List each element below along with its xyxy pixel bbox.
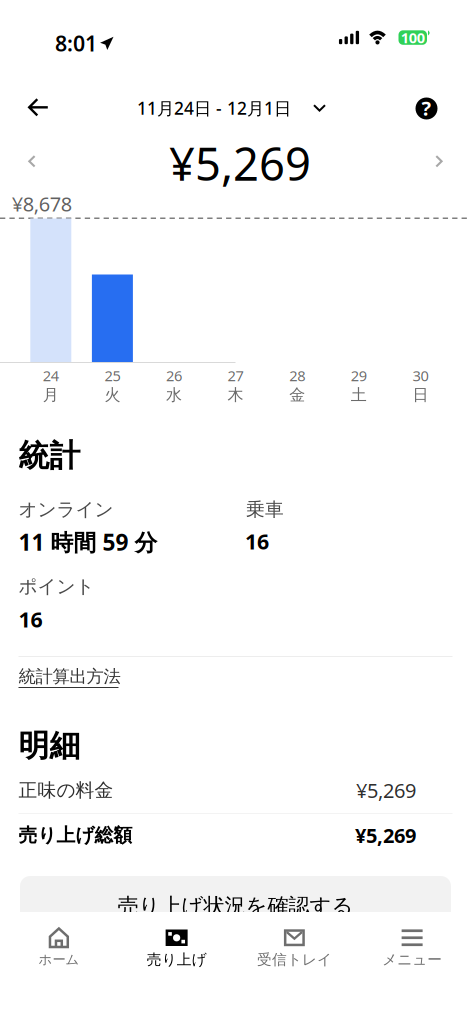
staticText: 統計 [18, 437, 80, 475]
staticText: 16 [18, 605, 42, 633]
staticText: ¥5,269 [169, 133, 311, 193]
button[interactable]: 統計算出方法 [17, 662, 121, 694]
button[interactable]: 11月24日 - 12月1日 [126, 90, 337, 126]
staticText: 受信トレイ [257, 950, 332, 968]
staticText: 火 [104, 385, 120, 405]
staticText: 日 [412, 385, 428, 405]
staticText: オンライン [18, 498, 113, 521]
staticText: 11月24日 - 12月1日 [137, 96, 291, 119]
staticText: 乗車 [246, 498, 284, 521]
staticText: 29 [351, 366, 367, 385]
staticText: 水 [166, 385, 182, 405]
staticText: ? [421, 95, 431, 121]
staticText: 明細 [18, 727, 80, 765]
button[interactable]: 戻る [17, 87, 60, 127]
staticText: 26 [166, 366, 182, 385]
staticText: 8:01 [55, 29, 97, 57]
button[interactable]: 売り上げ [118, 912, 236, 982]
staticText: 16 [245, 527, 269, 555]
staticText: ¥8,678 [12, 190, 72, 217]
staticText: 月 [43, 385, 59, 405]
staticText: 27 [228, 366, 244, 385]
staticText: ¥5,269 [355, 822, 416, 849]
staticText: 金 [289, 385, 305, 405]
staticText: 木 [228, 385, 244, 405]
staticText: 土 [351, 385, 367, 405]
staticText: ホーム [38, 951, 79, 968]
button[interactable]: ホーム [0, 912, 118, 982]
staticText: 28 [289, 366, 305, 385]
button[interactable]: 次の週 [421, 141, 457, 182]
staticText: 25 [104, 366, 120, 385]
staticText: 売り上げ状況を確認する [117, 893, 353, 919]
button[interactable]: メニュー [353, 912, 471, 982]
staticText: 売り上げ [147, 950, 207, 968]
staticText: 正味の料金 [18, 779, 113, 802]
staticText: メニュー [382, 950, 442, 968]
staticText: 100 [401, 28, 425, 47]
staticText: ¥5,269 [356, 777, 416, 804]
staticText: 24 [43, 366, 59, 385]
staticText: 11 時間 59 分 [18, 527, 157, 557]
button[interactable]: ヘルプ [404, 86, 448, 130]
staticText: ポイント [18, 575, 94, 598]
button[interactable]: 前の週 [14, 141, 50, 182]
staticText: 統計算出方法 [18, 666, 120, 687]
button[interactable]: 受信トレイ [235, 912, 353, 982]
button[interactable]: 売り上げ状況を確認する [20, 876, 451, 940]
staticText: 30 [412, 366, 428, 385]
staticText: 売り上げ総額 [18, 824, 132, 847]
